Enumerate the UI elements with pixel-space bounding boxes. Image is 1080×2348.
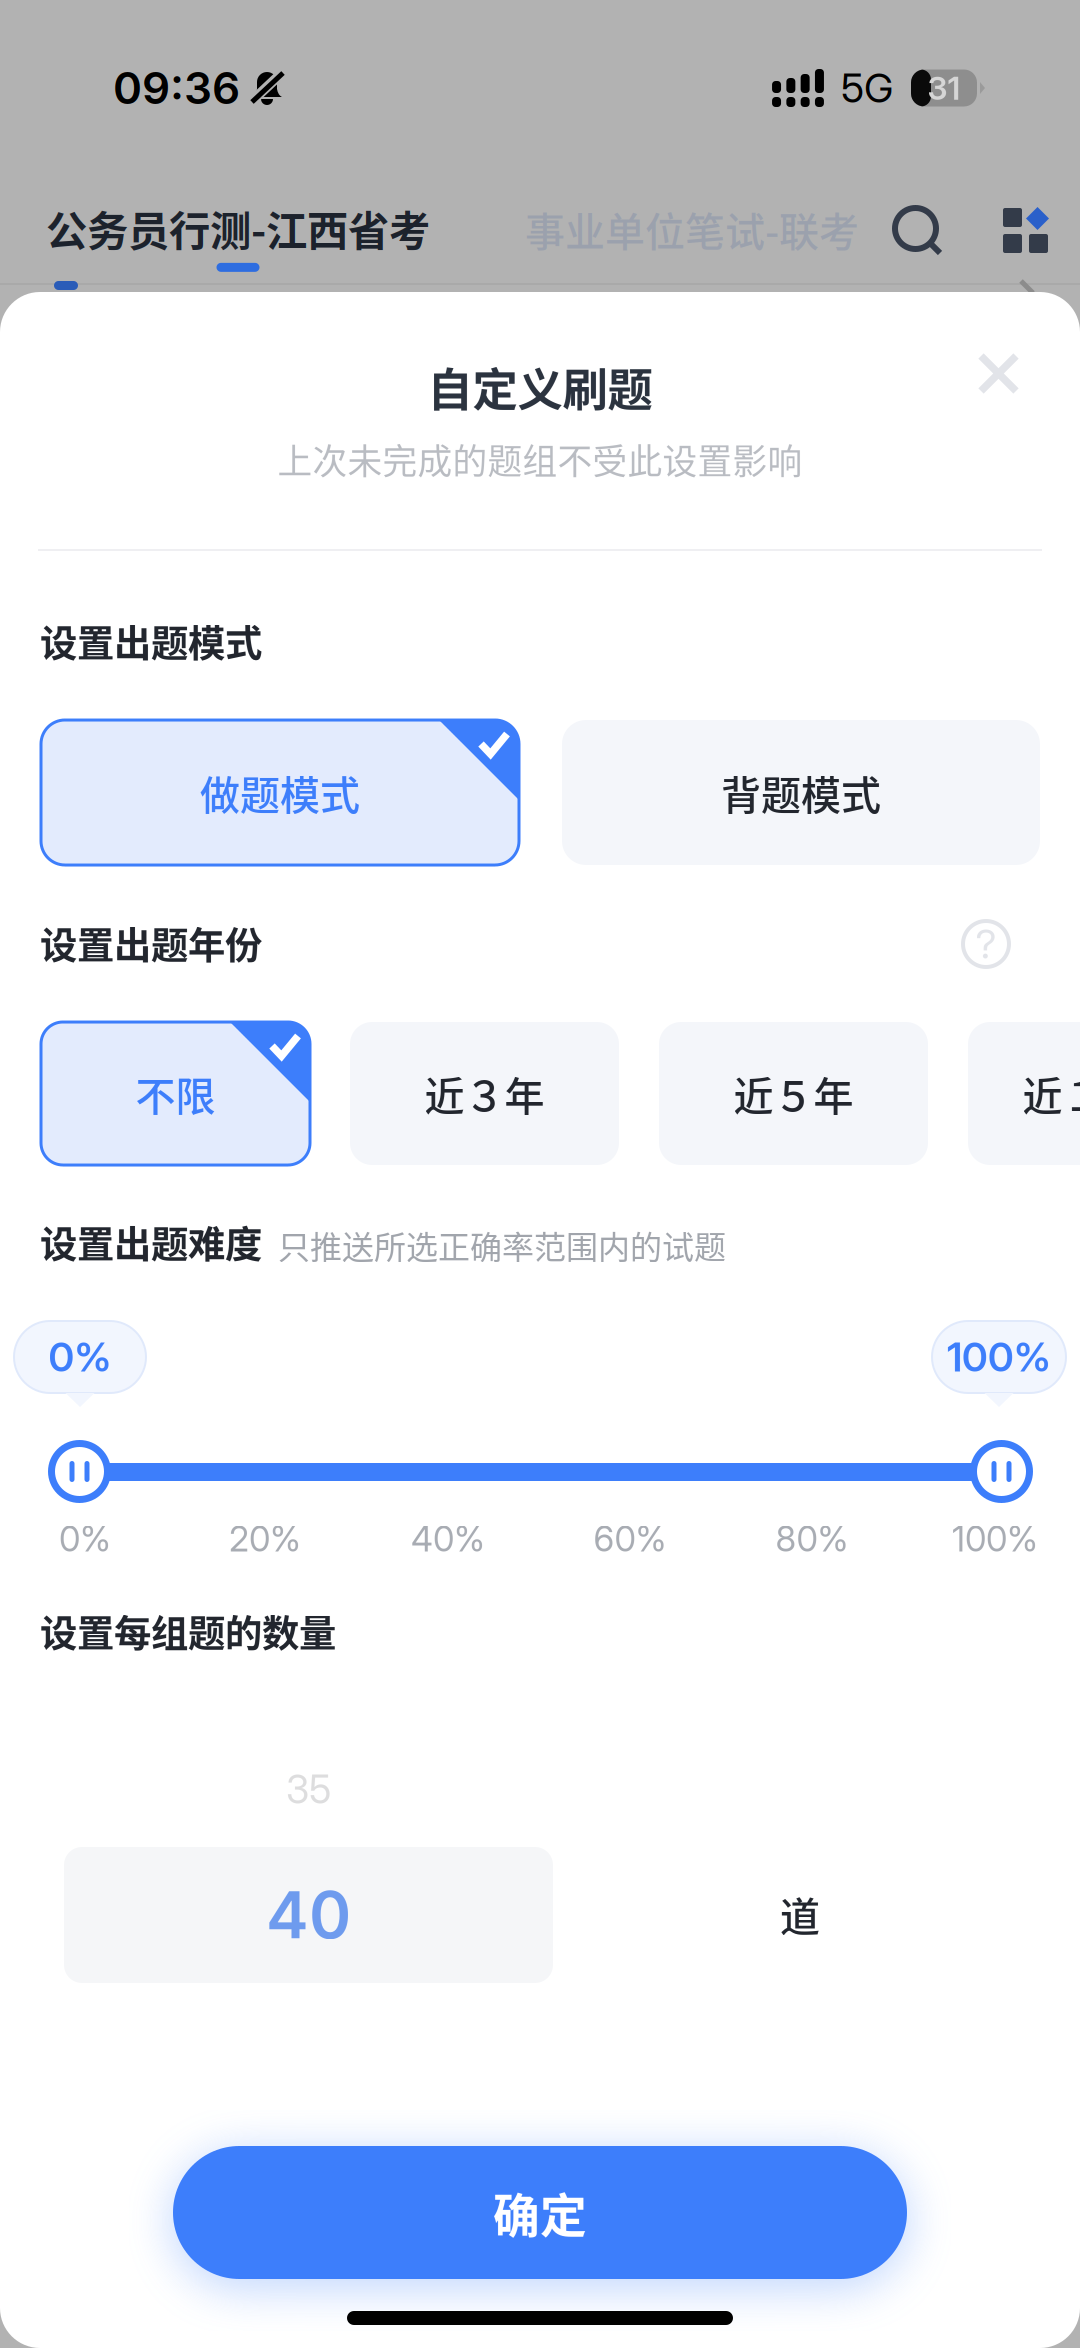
- staticText: 近１０年: [1022, 1064, 1080, 1122]
- staticText: 事业单位笔试-联考: [525, 200, 859, 258]
- staticText: 35: [286, 1766, 331, 1813]
- button[interactable]: 近３年: [350, 1022, 619, 1165]
- staticText: 0%: [48, 1333, 111, 1381]
- staticText: 设置出题模式: [40, 614, 262, 668]
- button[interactable]: 确定: [173, 2146, 907, 2279]
- staticText: 只推送所选正确率范围内的试题: [278, 1222, 726, 1268]
- staticText: ?: [975, 920, 996, 968]
- staticText: 不限: [135, 1064, 215, 1122]
- staticText: 设置每组题的数量: [40, 1604, 336, 1658]
- staticText: 0%: [59, 1518, 111, 1560]
- button[interactable]: 近５年: [659, 1022, 928, 1165]
- staticText: 近３年: [424, 1064, 544, 1122]
- staticText: 自定义刷题: [427, 354, 652, 420]
- staticText: 做题模式: [200, 763, 360, 821]
- staticText: 设置出题难度: [40, 1215, 262, 1269]
- staticText: 道: [780, 1885, 820, 1943]
- button[interactable]: 近１０年: [968, 1022, 1080, 1165]
- staticText: 09:36: [113, 61, 240, 115]
- staticText: 31: [927, 69, 960, 107]
- staticText: 确定: [493, 2179, 587, 2246]
- staticText: 60%: [593, 1518, 666, 1560]
- button[interactable]: Search: [881, 194, 954, 267]
- staticText: 设置出题年份: [40, 916, 262, 970]
- staticText: 100%: [952, 1518, 1038, 1560]
- staticText: 上次未完成的题组不受此设置影响: [277, 434, 802, 484]
- staticText: 40%: [411, 1518, 485, 1560]
- button[interactable]: Help: [951, 909, 1021, 979]
- button[interactable]: Categories: [989, 194, 1063, 268]
- staticText: 100%: [947, 1333, 1051, 1381]
- button[interactable]: 背题模式: [562, 720, 1040, 865]
- staticText: 80%: [775, 1518, 848, 1560]
- staticText: 40: [266, 1876, 351, 1954]
- staticText: 公务员行测-江西省考: [46, 198, 430, 258]
- button[interactable]: Close: [953, 328, 1044, 419]
- staticText: 20%: [229, 1518, 301, 1560]
- button[interactable]: 不限: [41, 1022, 310, 1165]
- staticText: 背题模式: [721, 763, 881, 821]
- staticText: 近５年: [733, 1064, 853, 1122]
- staticText: 5G: [841, 64, 893, 112]
- button[interactable]: 做题模式: [41, 720, 519, 865]
